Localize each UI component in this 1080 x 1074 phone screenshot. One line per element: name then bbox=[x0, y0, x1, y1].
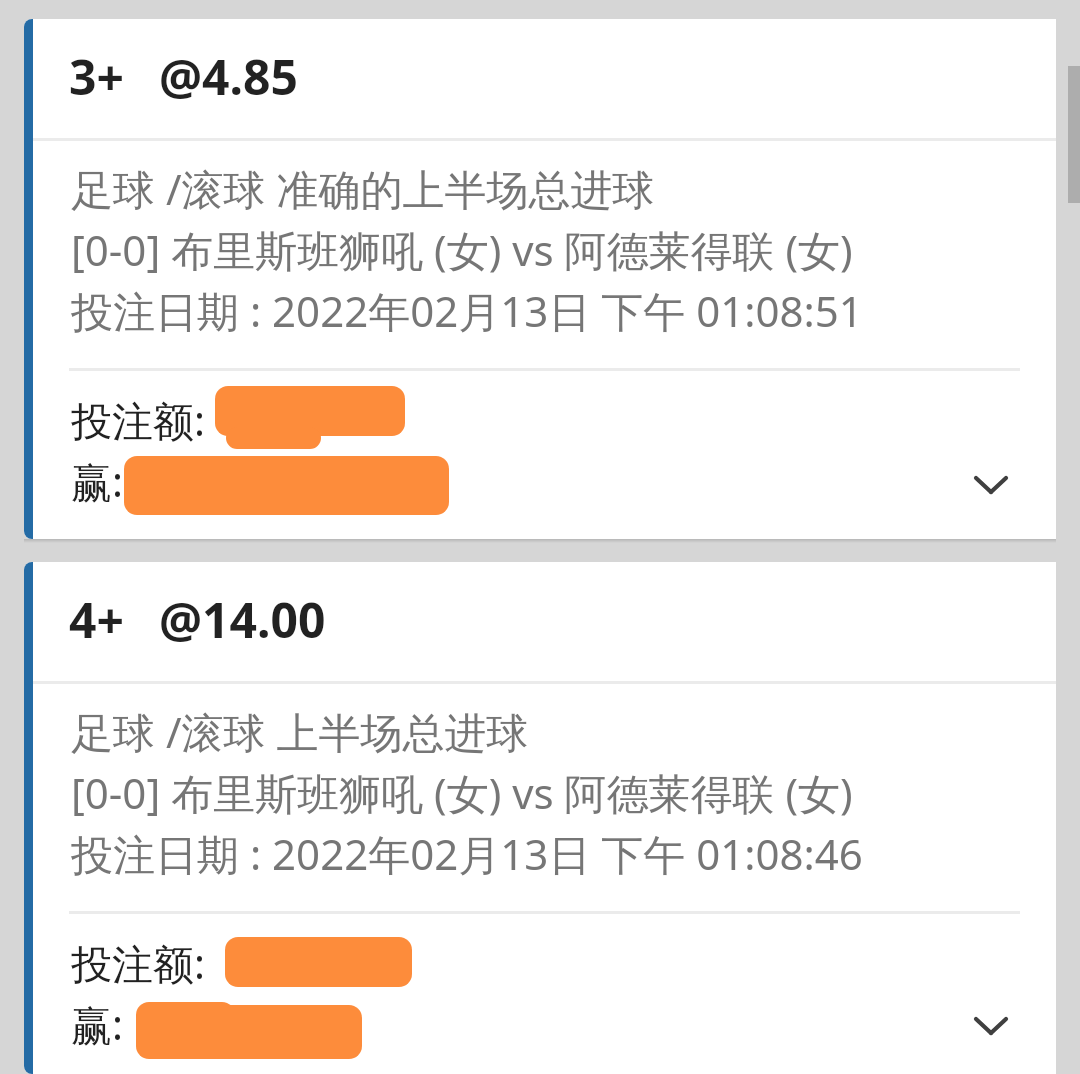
staticText: 投注额: bbox=[71, 392, 205, 448]
button[interactable]: Expand bet details bbox=[962, 461, 1020, 509]
button[interactable]: 4+ bbox=[24, 562, 1056, 1074]
staticText: 足球 /滚球 上半场总进球 bbox=[71, 702, 529, 763]
staticText: 足球 /滚球 准确的上半场总进球 bbox=[71, 159, 655, 220]
staticText: @14.00 bbox=[159, 587, 326, 652]
staticText: 4+ bbox=[69, 587, 124, 652]
staticText: 赢: bbox=[71, 996, 123, 1052]
staticText: @4.85 bbox=[159, 44, 298, 109]
staticText: 赢: bbox=[71, 453, 123, 509]
button[interactable]: 3+ bbox=[24, 19, 1056, 539]
staticText: 3+ bbox=[69, 44, 124, 109]
staticText: 投注日期 : 2022年02月13日 下午 01:08:46 bbox=[71, 824, 863, 885]
staticText: 投注额: bbox=[71, 935, 205, 991]
staticText: [0-0] 布里斯班狮吼 (女) vs 阿德莱得联 (女) bbox=[71, 763, 853, 824]
staticText: 投注日期 : 2022年02月13日 下午 01:08:51 bbox=[71, 281, 863, 342]
button[interactable]: Expand bet details bbox=[962, 1002, 1020, 1050]
staticText: [0-0] 布里斯班狮吼 (女) vs 阿德莱得联 (女) bbox=[71, 220, 853, 281]
